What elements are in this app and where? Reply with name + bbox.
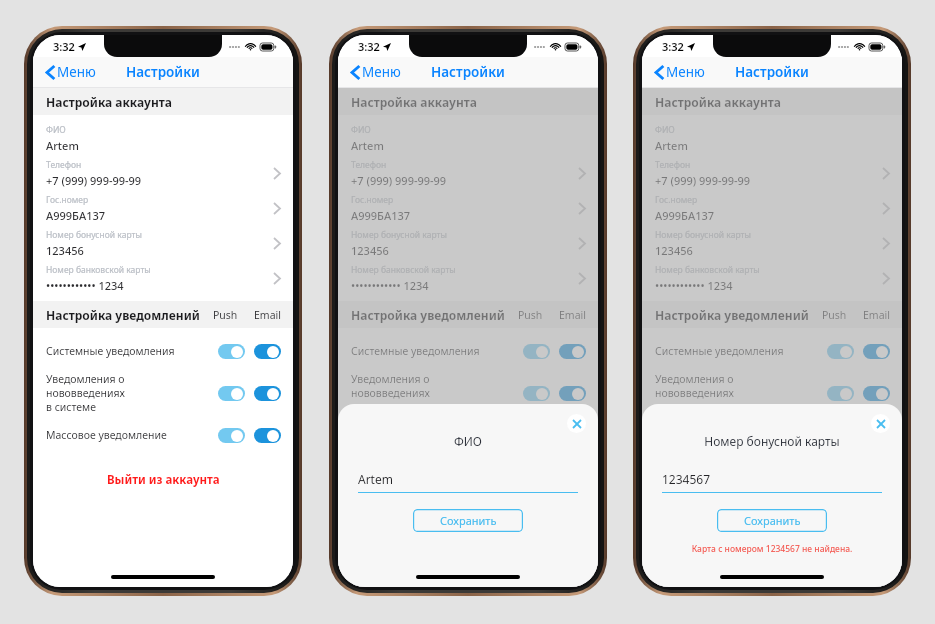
staticText: Номер банковской карты — [655, 264, 760, 276]
button[interactable]: Меню — [348, 60, 405, 84]
button[interactable]: Email notification toggle — [254, 428, 281, 443]
staticText: Телефон — [46, 159, 82, 171]
staticText: Настройки — [126, 63, 200, 81]
staticText: Массовое уведомление — [351, 428, 501, 442]
button[interactable]: Гос.номер — [33, 191, 293, 226]
button[interactable]: Push notification toggle — [523, 386, 550, 401]
staticText: Email — [254, 308, 281, 322]
button[interactable]: Сохранить — [413, 509, 523, 532]
button[interactable]: Телефон — [642, 156, 902, 191]
staticText: Телефон — [655, 159, 691, 171]
staticText: Системные уведомления — [46, 344, 196, 358]
button[interactable]: Номер банковской карты — [642, 261, 902, 296]
staticText: А999БА137 — [46, 208, 106, 223]
button[interactable]: Выйти из аккаунта — [97, 468, 230, 492]
button[interactable]: Email notification toggle — [863, 428, 890, 443]
staticText: Уведомления о нововведениях в системе — [351, 372, 501, 414]
staticText: Меню — [57, 63, 96, 81]
button[interactable]: Push notification toggle — [218, 386, 245, 401]
button[interactable]: Push notification toggle — [827, 428, 854, 443]
button[interactable]: Номер банковской карты — [338, 261, 598, 296]
staticText: ФИО — [655, 124, 675, 136]
staticText: Настройка аккаунта — [46, 94, 172, 110]
staticText: Настройка уведомлений — [46, 307, 200, 323]
staticText: Email — [559, 308, 586, 322]
button[interactable]: Гос.номер — [338, 191, 598, 226]
staticText: 3:32 — [53, 39, 75, 54]
button[interactable]: Email notification toggle — [559, 344, 586, 359]
button[interactable]: Меню — [43, 60, 100, 84]
button[interactable]: Push notification toggle — [218, 428, 245, 443]
button[interactable]: ФИО — [338, 121, 598, 156]
staticText: 3:32 — [358, 39, 380, 54]
staticText: А999БА137 — [351, 208, 411, 223]
staticText: 1234567 — [662, 471, 711, 487]
staticText: Выйти из аккаунта — [107, 472, 220, 488]
button[interactable]: Телефон — [338, 156, 598, 191]
staticText: Artem — [46, 138, 79, 153]
staticText: •••••••••••• 1234 — [351, 278, 429, 293]
staticText: Номер бонусной карты — [351, 229, 447, 241]
staticText: Email — [863, 308, 890, 322]
staticText: Меню — [362, 63, 401, 81]
staticText: А999БА137 — [655, 208, 715, 223]
button[interactable]: Push notification toggle — [218, 344, 245, 359]
button[interactable]: Email notification toggle — [863, 386, 890, 401]
staticText: Системные уведомления — [351, 344, 501, 358]
button[interactable]: Гос.номер — [642, 191, 902, 226]
button[interactable]: Email notification toggle — [254, 344, 281, 359]
button[interactable]: Телефон — [33, 156, 293, 191]
staticText: Push — [822, 308, 847, 322]
staticText: Настройка уведомлений — [351, 307, 505, 323]
button[interactable]: Сохранить — [717, 509, 827, 532]
staticText: Гос.номер — [351, 194, 394, 206]
staticText: Системные уведомления — [655, 344, 805, 358]
button[interactable]: Номер бонусной карты — [642, 226, 902, 261]
staticText: Push — [518, 308, 543, 322]
button[interactable]: ФИО — [33, 121, 293, 156]
staticText: Номер банковской карты — [46, 264, 151, 276]
staticText: ФИО — [46, 124, 66, 136]
staticText: Сохранить — [744, 513, 801, 528]
staticText: Настройка уведомлений — [655, 307, 809, 323]
staticText: +7 (999) 999-99-99 — [655, 173, 751, 188]
staticText: Номер бонусной карты — [655, 229, 751, 241]
staticText: ФИО — [351, 124, 371, 136]
button[interactable]: Push notification toggle — [827, 386, 854, 401]
staticText: 3:32 — [662, 39, 684, 54]
staticText: Номер банковской карты — [351, 264, 456, 276]
staticText: 123456 — [655, 243, 693, 258]
staticText: Сохранить — [440, 513, 497, 528]
button[interactable]: Номер банковской карты — [33, 261, 293, 296]
staticText: •••••••••••• 1234 — [655, 278, 733, 293]
staticText: Гос.номер — [655, 194, 698, 206]
staticText: Номер бонусной карты — [642, 433, 902, 449]
button[interactable]: Push notification toggle — [523, 344, 550, 359]
staticText: ФИО — [338, 433, 598, 449]
staticText: Настройки — [431, 63, 505, 81]
staticText: Карта с номером 1234567 не найдена. — [642, 543, 902, 555]
button[interactable]: Push notification toggle — [827, 344, 854, 359]
button[interactable]: Номер бонусной карты — [33, 226, 293, 261]
staticText: 123456 — [351, 243, 389, 258]
button[interactable]: Меню — [652, 60, 709, 84]
button[interactable]: ФИО — [642, 121, 902, 156]
staticText: Телефон — [351, 159, 387, 171]
staticText: Artem — [351, 138, 384, 153]
staticText: Push — [213, 308, 238, 322]
staticText: •••••••••••• 1234 — [46, 278, 124, 293]
staticText: Меню — [666, 63, 705, 81]
button[interactable]: Email notification toggle — [559, 386, 586, 401]
button[interactable]: Email notification toggle — [863, 344, 890, 359]
button[interactable]: Email notification toggle — [559, 428, 586, 443]
staticText: Artem — [655, 138, 688, 153]
staticText: Artem — [358, 471, 393, 487]
staticText: Уведомления о нововведениях в системе — [46, 372, 196, 414]
staticText: Гос.номер — [46, 194, 89, 206]
button[interactable]: Close — [567, 414, 586, 433]
button[interactable]: Email notification toggle — [254, 386, 281, 401]
button[interactable]: Close — [871, 414, 890, 433]
staticText: +7 (999) 999-99-99 — [351, 173, 447, 188]
button[interactable]: Номер бонусной карты — [338, 226, 598, 261]
